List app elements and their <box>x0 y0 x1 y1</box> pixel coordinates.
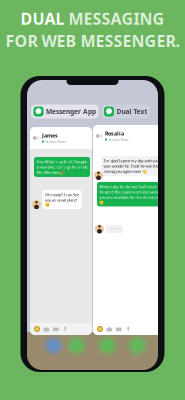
staticText: Hey What's up Bro!! I bought a new bike,… <box>36 159 87 175</box>
button[interactable]: Dual Text <box>101 104 150 118</box>
button[interactable]: Back <box>33 135 39 141</box>
staticText: James <box>42 132 58 139</box>
button[interactable]: Voice message <box>125 326 131 332</box>
staticText: MESSAGING <box>68 8 164 29</box>
button[interactable]: Messenger App <box>31 104 98 118</box>
staticText: What a day for the too! I will never for… <box>99 184 161 204</box>
button[interactable]: Camera <box>106 326 112 332</box>
staticText: Active Now <box>46 139 66 144</box>
button[interactable]: Photos <box>53 326 59 332</box>
button[interactable]: Emoji <box>97 326 103 332</box>
staticText: FOR WEB MESSENGER. <box>5 30 179 51</box>
button[interactable]: Emoji <box>34 326 40 332</box>
staticText: Messenger App <box>46 107 96 116</box>
staticText: Oh ready!! I can See you as usual place!… <box>45 192 79 207</box>
button[interactable]: Photos <box>116 326 122 332</box>
staticText: DUAL <box>20 8 68 29</box>
staticText: Rosalia <box>105 130 124 137</box>
staticText: I'm glad I spent my day with you, it was… <box>103 158 162 174</box>
staticText: Active Now <box>109 137 129 142</box>
staticText: Dual Text <box>116 107 147 116</box>
button[interactable]: Camera <box>43 326 49 332</box>
button[interactable]: Back <box>96 133 102 139</box>
button[interactable]: Voice message <box>62 326 68 332</box>
